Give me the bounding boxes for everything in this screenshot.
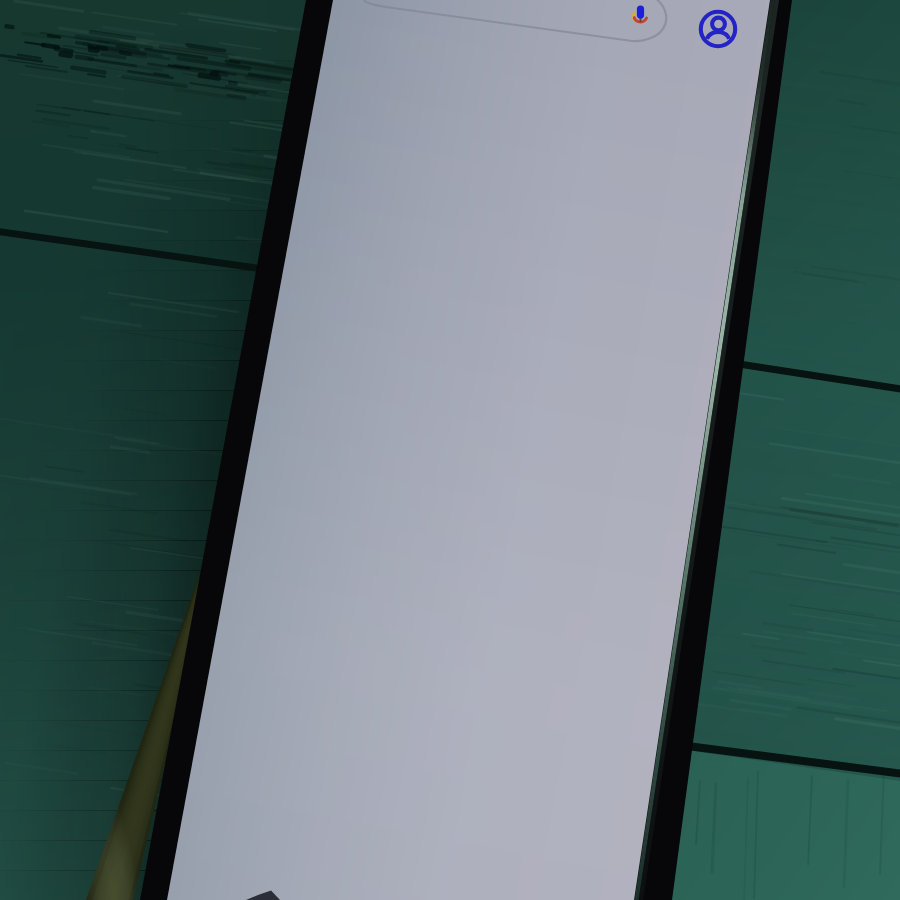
button[interactable]: Voice search (624, 0, 658, 34)
button[interactable]: Search (356, 0, 656, 44)
button[interactable]: Google account (694, 0, 742, 48)
